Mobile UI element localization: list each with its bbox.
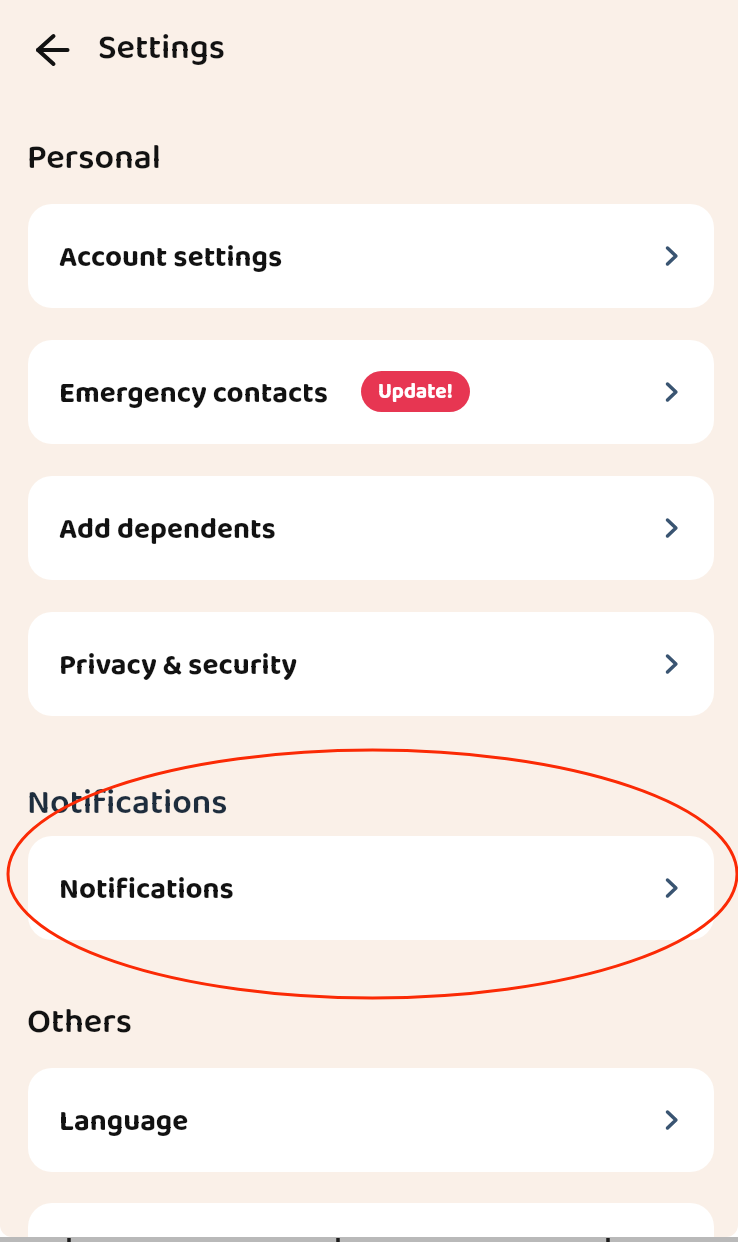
staticText: Others [27,995,133,1050]
button[interactable]: Language [28,1068,714,1172]
staticText: Account settings [59,234,283,281]
staticText: Notifications [27,776,228,831]
button[interactable]: Notifications [28,836,714,940]
button[interactable]: Back [28,26,76,74]
button[interactable]: Account settings [28,204,714,308]
staticText: Update! [378,375,453,409]
staticText: Language [59,1098,189,1145]
button[interactable]: Update! [361,371,470,412]
button[interactable]: Privacy & security [28,612,714,716]
staticText: Personal [27,131,161,186]
staticText: Settings [98,21,225,76]
staticText: Emergency contacts [59,370,329,417]
staticText: Add dependents [59,506,276,553]
staticText: Privacy & security [59,642,298,689]
button[interactable]: Emergency contacts [28,340,714,444]
staticText: Notifications [59,866,234,913]
button[interactable]: Add dependents [28,476,714,580]
